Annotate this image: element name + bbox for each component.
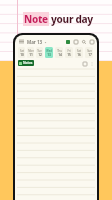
staticText: 11 [29,53,33,57]
staticText: Sun [87,49,92,53]
button[interactable]: Notes [18,60,34,66]
staticText: 14 [58,53,62,57]
button[interactable]: Menu [18,38,25,45]
staticText: Mar 13 [27,39,43,45]
button[interactable]: Fri [65,47,73,58]
button[interactable]: More [89,61,94,66]
button[interactable]: Reminder [82,61,87,66]
staticText: 12 [38,53,42,57]
button[interactable]: Mar 13 [27,39,47,45]
button[interactable]: Sat [18,47,25,58]
button[interactable]: Today [65,39,70,44]
staticText: Sat [20,49,24,53]
staticText: 10 [20,53,24,57]
staticText: 16 [77,53,81,57]
staticText: Notes [23,61,33,65]
staticText: Mon [28,49,34,53]
button[interactable]: Calendar view [73,39,78,44]
staticText: Thu [57,49,62,53]
button[interactable]: Sun [85,47,93,58]
staticText: Wed [46,49,52,53]
button[interactable]: Sat [75,47,83,58]
button[interactable]: Search [81,39,86,44]
staticText: 15 [67,53,71,57]
staticText: Note [24,12,48,26]
staticText: your day [51,12,93,26]
button[interactable]: Mon [27,47,34,58]
button[interactable]: Thu [55,47,63,58]
staticText: Fri [67,49,71,53]
staticText: 13 [47,53,51,57]
button[interactable]: Tue [36,47,43,58]
button[interactable]: Wed [45,47,53,58]
staticText: Sat [77,49,81,53]
button[interactable]: More options [89,39,94,44]
staticText: Tue [37,49,42,53]
staticText: 17 [88,53,92,57]
